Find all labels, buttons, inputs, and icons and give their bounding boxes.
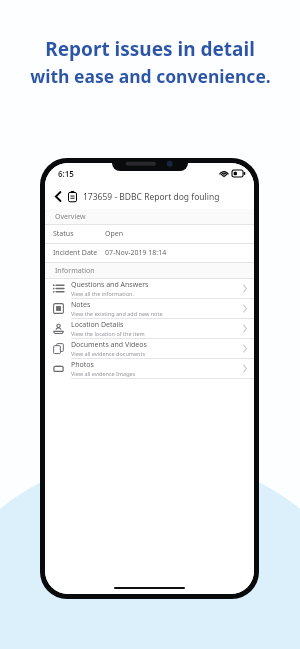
button[interactable]: Notes [45, 299, 254, 318]
button[interactable]: Photos [45, 359, 254, 378]
button[interactable]: Location Details [45, 319, 254, 338]
staticText: 173659 - BDBC Report dog fouling [83, 191, 220, 203]
staticText: Status [53, 229, 74, 239]
staticText: Photos [71, 360, 94, 370]
staticText: Documents and Videos [71, 340, 147, 350]
staticText: View all the information. [71, 290, 134, 297]
staticText: Notes [71, 300, 91, 310]
staticText: View all evidence documents [71, 350, 146, 357]
staticText: View the location of the item [71, 330, 145, 337]
staticText: Information [55, 266, 95, 276]
staticText: 6:15 [58, 168, 74, 179]
staticText: Incident Date [53, 248, 98, 258]
staticText: 07-Nov-2019 18:14 [105, 248, 167, 258]
staticText: Open [105, 229, 124, 239]
button[interactable]: Documents and Videos [45, 339, 254, 358]
staticText: with ease and convenience. [30, 64, 271, 88]
button[interactable]: Back [45, 184, 254, 209]
button[interactable]: Questions and Answers [45, 279, 254, 298]
staticText: Questions and Answers [71, 280, 149, 290]
staticText: Location Details [71, 320, 124, 330]
staticText: View the existing and add new note [71, 310, 163, 317]
staticText: Overview [55, 212, 86, 222]
staticText: Report issues in detail [45, 36, 255, 62]
staticText: View all evidence Images [71, 370, 136, 377]
button[interactable]: Back [52, 190, 65, 203]
